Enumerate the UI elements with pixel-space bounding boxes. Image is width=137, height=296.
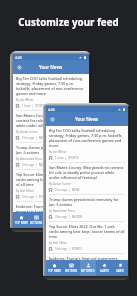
button[interactable]: Settings — [15, 63, 24, 72]
staticText: 5 hrs ago | SPORTS — [22, 195, 49, 199]
button[interactable]: Trump claims presidential immunity for J… — [49, 195, 125, 222]
button[interactable]: Top Soccer Elites 2023: Our No. 1 pick r… — [16, 170, 86, 202]
button[interactable]: SECTIONS — [29, 212, 44, 228]
staticText: Trump claims presidential immunity for J… — [49, 197, 125, 207]
staticText: 1 hour | SPORTS — [55, 156, 79, 160]
button[interactable]: Big Ten COO talks football scheduling st… — [16, 74, 86, 111]
staticText: ALERTS — [62, 221, 71, 225]
staticText: Big Ten COO talks football scheduling st… — [16, 76, 86, 96]
staticText: San Mateo County: Man pleads no contest … — [16, 113, 86, 128]
staticText: 2 hrs ago | NEWS — [55, 188, 80, 192]
staticText: Your News — [75, 116, 99, 122]
button[interactable]: Evidence: Trump's financial statements i… — [16, 202, 86, 212]
staticText: Evidence: Trump's financial statements i… — [49, 256, 125, 260]
staticText: By Associated Press — [49, 209, 75, 213]
button[interactable]: ALERTS — [96, 260, 112, 276]
staticText: Top Soccer Elites 2023: Our No. 1 pick r… — [49, 224, 125, 239]
staticText: By Austin Turner — [49, 182, 71, 186]
button[interactable]: Settings — [48, 115, 57, 124]
staticText: Big Ten COO talks football scheduling st… — [49, 128, 125, 148]
staticText: SECTIONS — [30, 221, 43, 225]
staticText: By Austin Turner — [16, 130, 38, 134]
button[interactable]: SECTIONS — [63, 260, 80, 276]
staticText: By Jon Wilner — [49, 150, 67, 154]
staticText: SECTIONS — [65, 269, 78, 273]
button[interactable]: Trump claims presidential immunity for J… — [16, 143, 86, 170]
button[interactable]: SAVED — [112, 260, 128, 276]
button[interactable]: SAVED — [74, 212, 89, 228]
staticText: By Jon Wilner — [16, 98, 34, 102]
staticText: By Associated Press — [16, 157, 42, 161]
staticText: San Mateo County: Man pleads no contest … — [49, 165, 125, 180]
staticText: By Ann Killion — [16, 189, 34, 193]
staticText: Your News — [39, 64, 63, 70]
staticText: TOP NEWS — [48, 269, 61, 273]
button[interactable]: MY TOPICS — [44, 212, 59, 228]
staticText: 1 hour | SPORTS — [22, 104, 46, 108]
staticText: By Ann Killion — [49, 241, 67, 245]
button[interactable]: TOP NEWS — [13, 212, 29, 228]
staticText: 5 hrs ago | SPORTS — [55, 247, 82, 251]
staticText: 4:26 — [48, 107, 55, 112]
staticText: 3 hrs ago | NATION — [22, 163, 50, 167]
button[interactable]: Evidence: Trump's financial statements i… — [49, 254, 125, 260]
button[interactable]: Top Soccer Elites 2023: Our No. 1 pick r… — [49, 222, 125, 254]
button[interactable]: TOP NEWS — [46, 260, 63, 276]
staticText: MY TOPICS — [45, 221, 59, 225]
staticText: MY TOPICS — [81, 269, 95, 273]
staticText: SAVED — [116, 269, 124, 273]
staticText: 3 hrs ago | NATION — [55, 215, 83, 219]
staticText: Customize your feed — [0, 16, 137, 29]
button[interactable]: MY TOPICS — [80, 260, 96, 276]
staticText: Top Soccer Elites 2023: Our No. 1 pick r… — [16, 172, 86, 187]
button[interactable]: San Mateo County: Man pleads no contest … — [16, 111, 86, 143]
button[interactable]: Big Ten COO talks football scheduling st… — [49, 126, 125, 163]
staticText: Evidence: Trump's financial statements i… — [16, 204, 86, 212]
button[interactable]: ALERTS — [59, 212, 74, 228]
staticText: 4:26 — [15, 55, 22, 60]
staticText: TOP NEWS — [15, 221, 28, 225]
staticText: 2 hrs ago | NEWS — [22, 136, 47, 140]
button[interactable]: San Mateo County: Man pleads no contest … — [49, 163, 125, 195]
staticText: SAVED — [78, 221, 86, 225]
staticText: ALERTS — [100, 269, 109, 273]
staticText: Trump claims presidential immunity for J… — [16, 145, 86, 155]
